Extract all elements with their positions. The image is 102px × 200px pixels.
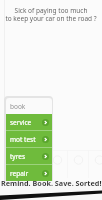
button[interactable]: service bbox=[6, 114, 52, 130]
staticText: Remind. Book. Save. Sorted! bbox=[1, 178, 102, 188]
staticText: repair bbox=[10, 169, 29, 178]
button[interactable]: mot test bbox=[6, 131, 52, 147]
staticText: tyres bbox=[10, 152, 25, 161]
staticText: book bbox=[10, 102, 26, 111]
staticText: Sick of paying too much to keep your car… bbox=[5, 6, 97, 23]
staticText: service bbox=[10, 118, 32, 127]
button[interactable]: repair bbox=[6, 165, 52, 181]
staticText: mot test bbox=[10, 135, 36, 144]
button[interactable]: tyres bbox=[6, 148, 52, 164]
